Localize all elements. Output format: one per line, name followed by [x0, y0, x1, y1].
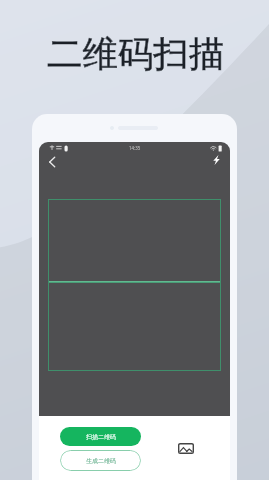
button[interactable]: Toggle flashlight	[208, 151, 225, 168]
staticText: 扫描二维码	[86, 433, 116, 441]
button[interactable]: 生成二维码	[60, 450, 141, 471]
staticText: 二维码扫描	[47, 32, 225, 77]
button[interactable]: Back	[42, 153, 61, 170]
staticText: 生成二维码	[86, 457, 116, 465]
button[interactable]: Pick image from album	[175, 437, 197, 459]
staticText: 二维码扫描	[47, 32, 225, 77]
button[interactable]: 扫描二维码	[60, 427, 141, 446]
staticText: 14:35	[129, 145, 141, 151]
